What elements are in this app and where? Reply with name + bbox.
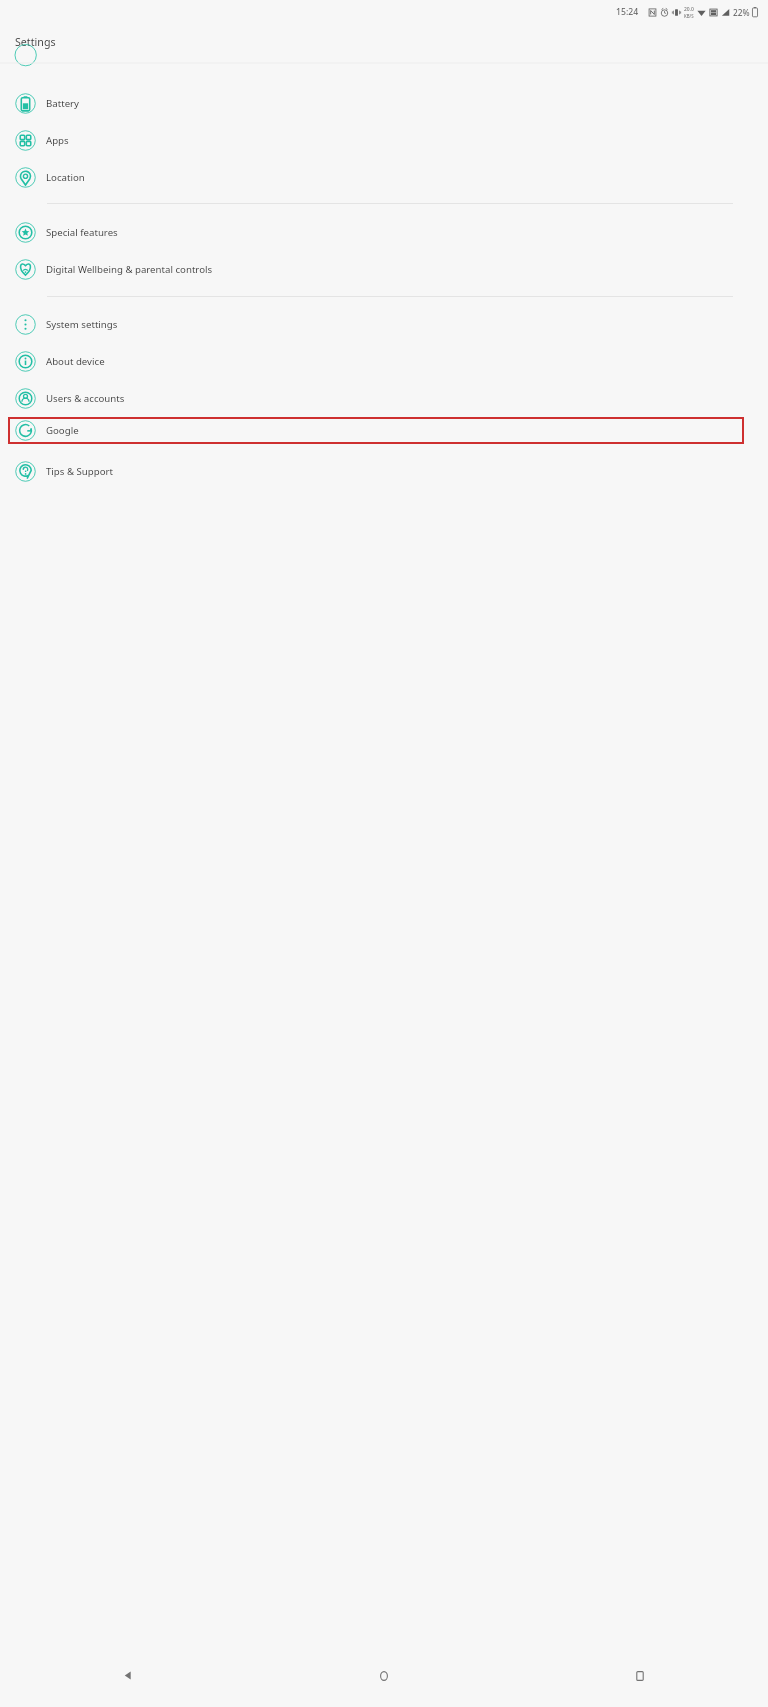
- staticText: Special features: [46, 226, 118, 239]
- staticText: 15:24: [616, 6, 639, 18]
- staticText: Apps: [46, 134, 69, 147]
- button[interactable]: Back: [0, 1657, 256, 1694]
- button[interactable]: System settings: [0, 306, 768, 343]
- staticText: Google: [46, 424, 79, 437]
- staticText: Digital Wellbeing & parental controls: [46, 263, 213, 276]
- staticText: 22%: [733, 7, 750, 18]
- button[interactable]: Recent apps: [512, 1657, 768, 1694]
- button[interactable]: Google: [8, 417, 744, 444]
- button[interactable]: Special features: [0, 214, 768, 251]
- button[interactable]: Tips & Support: [0, 453, 768, 490]
- staticText: Settings: [15, 35, 56, 50]
- button[interactable]: Location: [0, 159, 768, 196]
- staticText: System settings: [46, 318, 118, 331]
- staticText: About device: [46, 355, 105, 368]
- button[interactable]: Apps: [0, 122, 768, 159]
- button[interactable]: Home: [256, 1657, 512, 1694]
- button[interactable]: Digital Wellbeing & parental controls: [0, 251, 768, 288]
- staticText: Users & accounts: [46, 392, 125, 405]
- staticText: 20.0: [684, 6, 694, 13]
- staticText: Location: [46, 171, 85, 184]
- staticText: KB/S: [684, 13, 694, 19]
- button[interactable]: Users & accounts: [0, 380, 768, 417]
- staticText: Tips & Support: [46, 465, 113, 478]
- button[interactable]: About device: [0, 343, 768, 380]
- button[interactable]: Battery: [0, 85, 768, 122]
- staticText: Battery: [46, 97, 80, 110]
